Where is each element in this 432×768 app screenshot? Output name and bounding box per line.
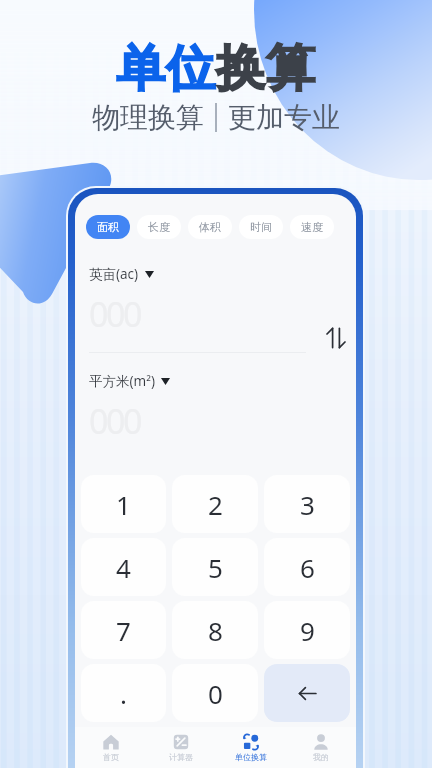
staticText: 9 — [300, 613, 315, 648]
button[interactable]: 平方米(m²) — [89, 372, 170, 390]
button[interactable]: 5 — [172, 538, 258, 596]
staticText: 我的 — [313, 752, 329, 762]
staticText: 1 — [116, 487, 131, 522]
staticText: 平方米(m²) — [89, 372, 155, 390]
button[interactable]: 面积 — [86, 215, 130, 239]
button[interactable]: 2 — [172, 475, 258, 533]
staticText: 0 — [208, 676, 223, 711]
staticText: 首页 — [103, 752, 119, 762]
staticText: 体积 — [199, 220, 221, 234]
button[interactable]: 0 — [172, 664, 258, 722]
button[interactable]: 7 — [81, 601, 166, 659]
button[interactable]: 首页 — [75, 727, 146, 768]
button[interactable]: 单位换算 — [216, 727, 286, 768]
button[interactable]: 8 — [172, 601, 258, 659]
staticText: 4 — [116, 550, 131, 585]
staticText: 计算器 — [169, 752, 193, 762]
button[interactable]: . — [81, 664, 166, 722]
staticText: 5 — [208, 550, 223, 585]
button[interactable]: 计算器 — [146, 727, 216, 768]
button[interactable]: 时间 — [239, 215, 283, 239]
staticText: 2 — [208, 487, 223, 522]
button[interactable]: 速度 — [290, 215, 334, 239]
staticText: 3 — [300, 487, 315, 522]
staticText: 更加专业 — [228, 100, 340, 135]
staticText: 速度 — [301, 220, 323, 234]
staticText: 换算 — [216, 38, 316, 100]
staticText: 物理换算 — [92, 100, 204, 135]
staticText: 单位换算 — [235, 752, 267, 762]
button[interactable]: 我的 — [286, 727, 356, 768]
staticText: 7 — [116, 613, 131, 648]
button[interactable]: 1 — [81, 475, 166, 533]
button[interactable]: 长度 — [137, 215, 181, 239]
staticText: 长度 — [148, 220, 170, 234]
button[interactable]: 6 — [264, 538, 350, 596]
staticText: 时间 — [250, 220, 272, 234]
staticText: 000 — [89, 398, 140, 444]
button[interactable]: 9 — [264, 601, 350, 659]
button[interactable]: 3 — [264, 475, 350, 533]
button[interactable]: 体积 — [188, 215, 232, 239]
staticText: 8 — [208, 613, 223, 648]
staticText: 6 — [300, 550, 315, 585]
button[interactable]: 英亩(ac) — [89, 265, 154, 283]
staticText: 单位 — [116, 38, 216, 100]
staticText: 000 — [89, 291, 140, 337]
button[interactable]: Swap units — [325, 327, 347, 349]
staticText: . — [120, 676, 127, 711]
staticText: 面积 — [97, 220, 119, 234]
button[interactable]: Backspace — [264, 664, 350, 722]
staticText: 英亩(ac) — [89, 265, 139, 283]
button[interactable]: 4 — [81, 538, 166, 596]
